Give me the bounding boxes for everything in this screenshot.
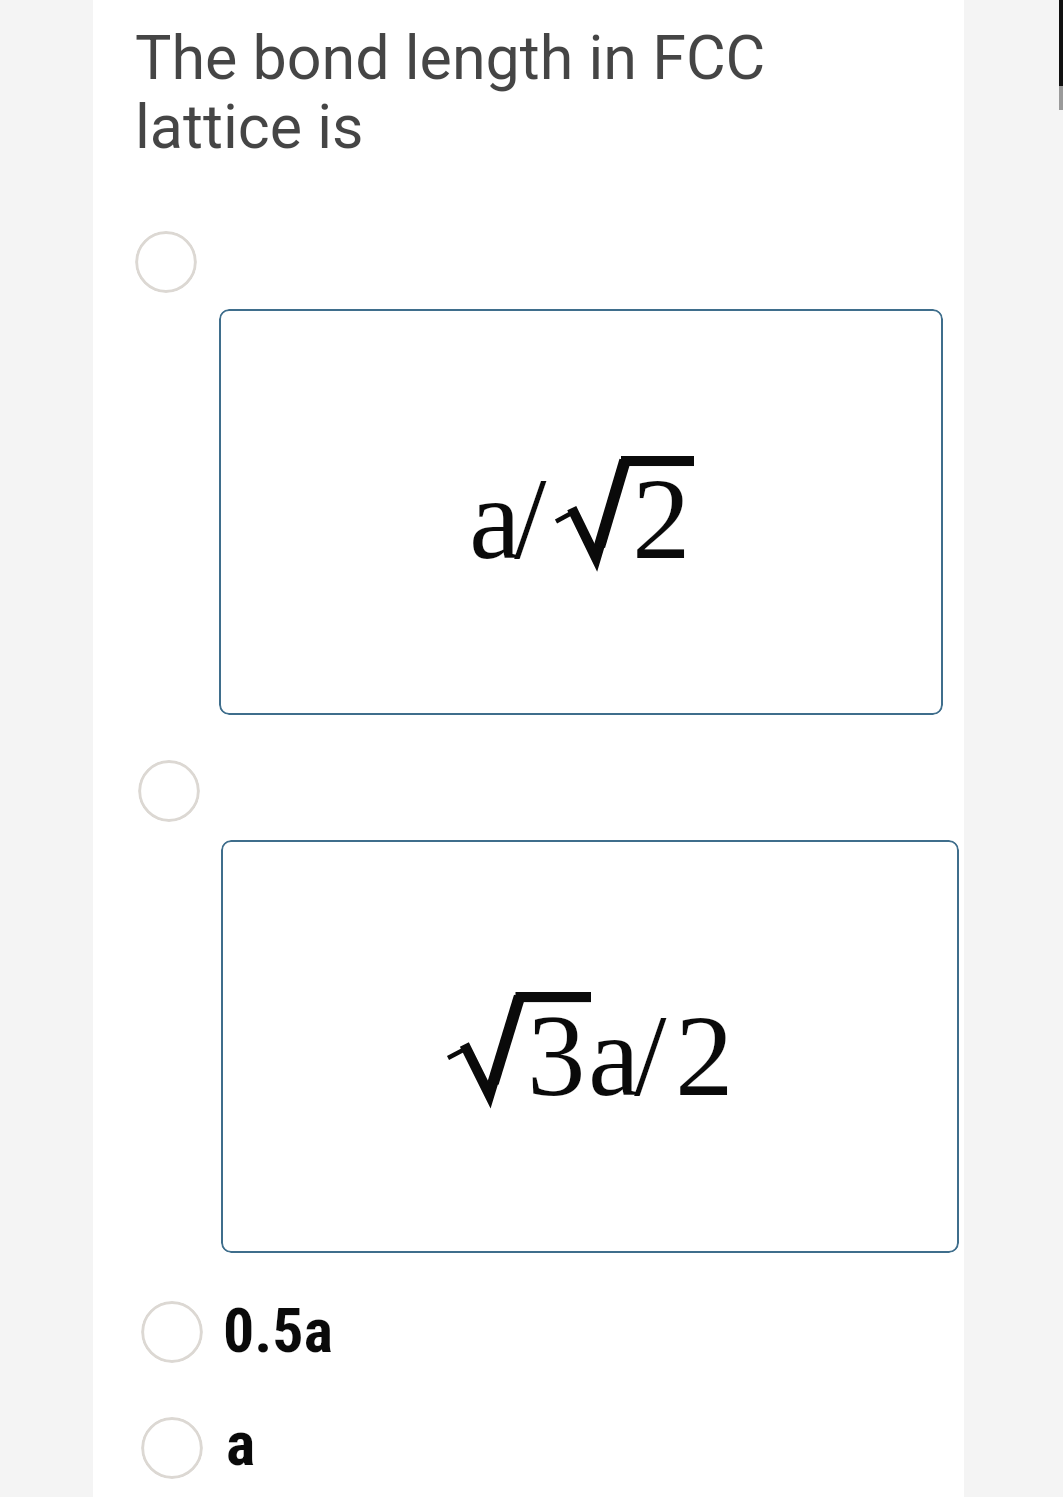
- staticText: a: [588, 991, 640, 1121]
- staticText: 0.5a: [223, 1294, 333, 1363]
- staticText: a: [226, 1407, 256, 1476]
- staticText: 3: [527, 991, 586, 1121]
- button[interactable]: Select option a: [141, 1413, 441, 1482]
- staticText: 2: [632, 454, 691, 584]
- button[interactable]: a over square root of 2: [219, 309, 943, 715]
- staticText: a: [469, 454, 521, 584]
- button[interactable]: Select option 0.5a: [141, 1301, 203, 1363]
- staticText: 2: [675, 991, 734, 1121]
- staticText: The bond length in FCC lattice is: [135, 22, 780, 163]
- button[interactable]: Select option square root of 3 a over 2: [138, 760, 200, 822]
- button[interactable]: Select option a over square root of 2: [135, 231, 197, 293]
- button[interactable]: square root of 3 a over 2: [221, 840, 959, 1253]
- button[interactable]: Select option a: [141, 1417, 203, 1479]
- staticText: /: [514, 454, 547, 584]
- staticText: /: [634, 991, 667, 1121]
- button[interactable]: Select option 0.5a: [141, 1297, 441, 1366]
